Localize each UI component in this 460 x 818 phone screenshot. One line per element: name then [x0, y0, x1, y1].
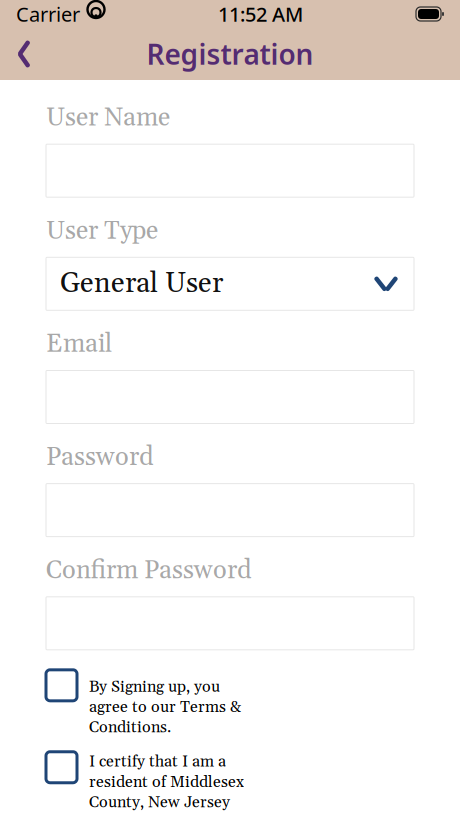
staticText: General User — [60, 266, 223, 301]
staticText: Registration — [146, 35, 313, 73]
button[interactable]: I certify that I am a resident of Middle… — [46, 752, 414, 813]
staticText: I certify that I am a resident of Middle… — [89, 752, 244, 813]
staticText: By Signing up, you agree to our Terms & … — [89, 677, 241, 738]
staticText: User Type — [46, 215, 158, 247]
staticText: User Name — [46, 102, 170, 134]
button[interactable]: General User — [46, 257, 414, 310]
button[interactable]: Back — [0, 32, 48, 76]
staticText: Confirm Password — [46, 555, 252, 587]
staticText: 11:52 AM — [218, 1, 303, 27]
button[interactable]: By Signing up, you agree to our Terms & … — [46, 670, 414, 738]
staticText: Email — [46, 328, 112, 360]
staticText: Carrier — [16, 1, 80, 27]
staticText: Password — [46, 441, 154, 474]
